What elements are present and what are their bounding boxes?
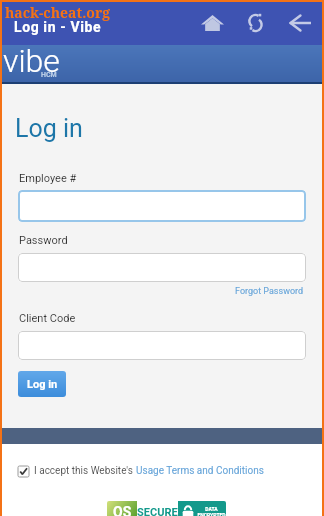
- button[interactable]: Refresh: [237, 6, 273, 40]
- staticText: Log in - Vibe: [14, 19, 102, 35]
- button[interactable]: [18, 331, 306, 360]
- staticText: hack-cheat.org: [5, 3, 111, 22]
- staticText: SECURE: [137, 506, 178, 516]
- button[interactable]: Home: [194, 6, 230, 40]
- staticText: Password: [19, 234, 68, 247]
- button[interactable]: Accept terms checkbox: [18, 466, 29, 477]
- button[interactable]: [18, 253, 306, 282]
- staticText: Client Code: [19, 312, 76, 325]
- staticText: OS: [113, 504, 132, 516]
- staticText: Log in: [15, 114, 83, 143]
- staticText: Employee #: [19, 172, 77, 185]
- button[interactable]: Usage Terms and Conditions: [136, 465, 264, 477]
- button[interactable]: [18, 190, 306, 222]
- staticText: I accept this Website's: [34, 465, 136, 477]
- button[interactable]: Back: [282, 6, 318, 40]
- button[interactable]: Log in: [18, 371, 66, 397]
- staticText: vibe: [3, 42, 60, 80]
- button[interactable]: Forgot Password: [235, 286, 304, 297]
- staticText: DATA ENCRYPTED: [197, 506, 226, 516]
- staticText: HCM: [41, 71, 57, 79]
- staticText: Log in: [27, 378, 58, 391]
